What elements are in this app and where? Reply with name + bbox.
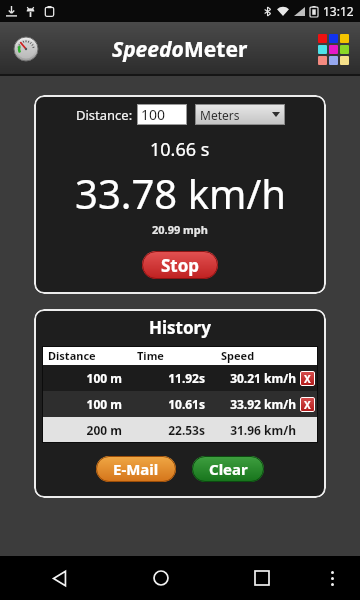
staticText: Speed xyxy=(221,348,318,363)
staticText: Distance xyxy=(48,348,137,363)
staticText: Clear xyxy=(209,459,248,479)
button[interactable]: Recents xyxy=(240,556,284,600)
staticText: 20.99 mph xyxy=(152,222,208,237)
staticText: 10.66 s xyxy=(150,137,210,162)
staticText: 33.92 km/h xyxy=(211,396,296,412)
staticText: E-Mail xyxy=(113,459,159,479)
staticText: 100 m xyxy=(42,396,122,412)
staticText: X xyxy=(304,398,311,412)
staticText: 10.61s xyxy=(128,396,205,412)
staticText: Speedo xyxy=(112,35,184,64)
button[interactable]: E-Mail xyxy=(96,456,176,482)
staticText: Stop xyxy=(161,254,200,277)
button[interactable]: 100 m xyxy=(42,391,318,417)
staticText: 30.21 km/h xyxy=(211,370,296,386)
button[interactable]: 100 m xyxy=(42,365,318,391)
staticText: Distance: xyxy=(76,106,133,124)
staticText: 22.53s xyxy=(128,422,205,438)
staticText: Meter xyxy=(184,35,248,64)
button[interactable]: Apps xyxy=(316,32,351,67)
staticText: Meters xyxy=(200,107,272,123)
staticText: Time xyxy=(137,348,221,363)
button[interactable]: Delete entry xyxy=(300,371,315,386)
staticText: 13:12 xyxy=(323,3,354,19)
button[interactable]: Stop xyxy=(142,251,218,279)
staticText: 200 m xyxy=(42,422,122,438)
staticText: 31.96 km/h xyxy=(211,422,296,438)
button[interactable]: Menu xyxy=(315,561,349,595)
staticText: 100 m xyxy=(42,370,122,386)
button[interactable]: 100 xyxy=(137,104,187,125)
staticText: History xyxy=(149,316,211,339)
button[interactable]: Back xyxy=(37,556,81,600)
button[interactable]: Meters xyxy=(195,104,285,125)
staticText: 33.78 km/h xyxy=(75,166,286,220)
staticText: 100 xyxy=(141,105,166,124)
staticText: X xyxy=(304,372,311,386)
staticText: 11.92s xyxy=(128,370,205,386)
button[interactable]: 200 m xyxy=(42,417,318,443)
button[interactable]: Delete entry xyxy=(300,397,315,412)
button[interactable]: Clear xyxy=(192,456,264,482)
button[interactable]: Home xyxy=(139,556,183,600)
